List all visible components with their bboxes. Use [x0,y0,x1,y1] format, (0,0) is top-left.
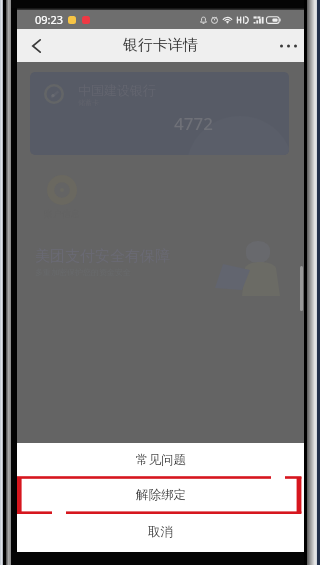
staticText: 银行卡详情 [123,36,198,55]
staticText: 解除绑定 [136,487,186,503]
button[interactable]: Back [21,31,51,61]
staticText: 取消 [148,524,173,540]
staticText: 09:23 [35,12,64,27]
staticText: 4772 [174,112,213,135]
button[interactable]: 解除绑定 [17,477,304,513]
button[interactable]: 取消 [17,513,304,551]
staticText: 中国建设银行 [78,82,156,98]
button[interactable]: More options [273,31,303,61]
button[interactable]: 常见问题 [17,443,304,477]
staticText: 常见问题 [136,452,186,468]
staticText: 美团支付安全有保障 [35,247,170,266]
